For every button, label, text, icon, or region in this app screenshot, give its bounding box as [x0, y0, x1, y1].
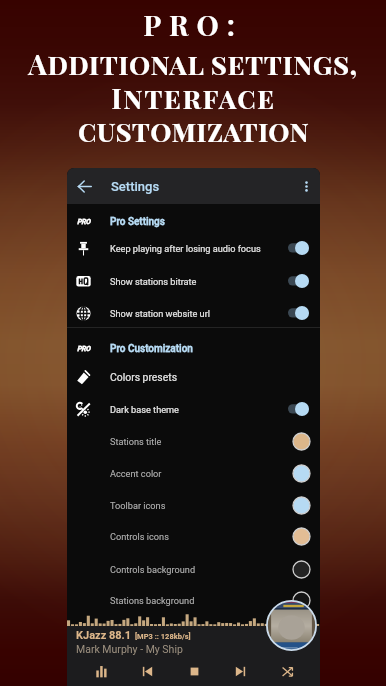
- staticText: Controls icons: [110, 531, 169, 542]
- button[interactable]: Controls icons: [67, 520, 320, 552]
- staticText: customization: [78, 112, 309, 149]
- button[interactable]: More options: [292, 168, 320, 204]
- staticText: Stations title: [110, 436, 162, 447]
- staticText: Show stations bitrate: [110, 276, 197, 287]
- staticText: Interface: [111, 79, 276, 116]
- button[interactable]: Stop: [181, 658, 207, 684]
- button[interactable]: Toolbar icons: [67, 489, 320, 521]
- staticText: PRO: [77, 218, 91, 226]
- button[interactable]: Shuffle: [274, 658, 300, 684]
- button[interactable]: Back: [67, 168, 101, 204]
- staticText: Mark Murphy - My Ship: [76, 643, 183, 655]
- button[interactable]: Previous: [134, 658, 160, 684]
- staticText: Dark base theme: [110, 404, 179, 415]
- staticText: Pro Customization: [110, 343, 193, 355]
- button[interactable]: Colors presets: [67, 361, 320, 393]
- staticText: Toolbar icons: [110, 500, 166, 511]
- staticText: Keep playing after losing audio focus: [110, 243, 261, 254]
- button[interactable]: Show stations bitrate: [67, 265, 320, 297]
- button[interactable]: Dark base theme: [67, 393, 320, 425]
- staticText: Pro Settings: [110, 216, 165, 228]
- staticText: Colors presets: [110, 371, 178, 383]
- staticText: KJazz 88.1: [76, 629, 132, 642]
- button[interactable]: Controls background: [67, 553, 320, 585]
- staticText: Controls background: [110, 564, 196, 575]
- staticText: Additional settings,: [28, 45, 358, 82]
- button[interactable]: Keep playing after losing audio focus: [67, 232, 320, 264]
- staticText: [MP3 :: 128kb/s]: [135, 632, 191, 641]
- staticText: Stations background: [110, 595, 195, 606]
- staticText: Show station website url: [110, 308, 210, 319]
- button[interactable]: Stations background: [67, 584, 320, 616]
- button[interactable]: Accent color: [67, 457, 320, 489]
- staticText: Settings: [111, 179, 160, 194]
- staticText: PRO: [77, 345, 91, 353]
- button[interactable]: Next: [227, 658, 253, 684]
- button[interactable]: Equalizer: [88, 658, 114, 684]
- staticText: PRO:: [143, 6, 243, 43]
- button[interactable]: Album art: [266, 600, 317, 651]
- button[interactable]: Show station website url: [67, 297, 320, 329]
- button[interactable]: Stations title: [67, 425, 320, 457]
- staticText: Accent color: [110, 468, 162, 479]
